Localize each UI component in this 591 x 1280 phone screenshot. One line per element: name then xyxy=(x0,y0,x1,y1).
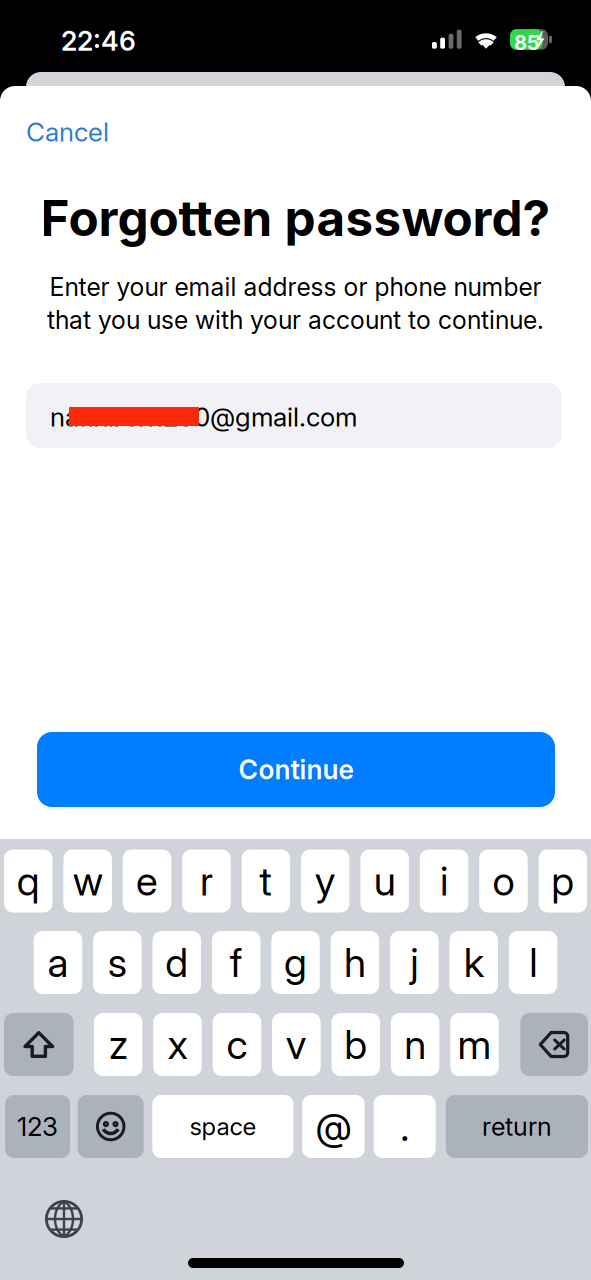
button[interactable]: . xyxy=(374,1095,436,1158)
button[interactable]: return xyxy=(446,1095,588,1158)
staticText: . xyxy=(400,1102,409,1151)
staticText: x xyxy=(168,1020,188,1069)
staticText: o xyxy=(492,857,514,905)
button[interactable]: d xyxy=(152,931,201,994)
button[interactable]: j xyxy=(390,931,439,994)
staticText: i xyxy=(440,857,448,905)
button[interactable]: @ xyxy=(302,1095,365,1158)
staticText: r xyxy=(200,857,213,905)
staticText: p xyxy=(551,857,574,905)
staticText: k xyxy=(464,938,484,987)
button[interactable]: v xyxy=(272,1013,321,1076)
button[interactable]: f xyxy=(212,931,260,994)
button[interactable]: z xyxy=(94,1013,142,1076)
staticText: Cancel xyxy=(26,116,109,148)
button[interactable]: k xyxy=(449,931,498,994)
button[interactable]: space xyxy=(152,1095,293,1158)
staticText: e xyxy=(136,857,158,905)
staticText: that you use with your account to contin… xyxy=(47,305,544,335)
staticText: Continue xyxy=(238,753,353,786)
button[interactable]: Next keyboard xyxy=(45,1200,83,1238)
staticText: g xyxy=(284,938,307,987)
button[interactable]: Cancel xyxy=(17,110,137,154)
staticText: Forgotten password? xyxy=(40,188,550,248)
staticText: l xyxy=(529,938,537,987)
button[interactable]: m xyxy=(450,1013,499,1076)
staticText: a xyxy=(47,938,68,987)
button[interactable]: a xyxy=(34,931,82,994)
staticText: return xyxy=(482,1111,552,1142)
staticText: z xyxy=(109,1020,128,1069)
staticText: j xyxy=(410,938,418,987)
staticText: b xyxy=(344,1020,367,1069)
button[interactable]: Continue xyxy=(37,732,555,807)
staticText: m xyxy=(457,1020,491,1069)
staticText: nafixbox1230@gmail.com xyxy=(50,401,357,433)
staticText: u xyxy=(374,857,396,905)
button[interactable]: q xyxy=(4,849,52,912)
button[interactable]: r xyxy=(182,849,231,912)
button[interactable]: n xyxy=(391,1013,439,1076)
staticText: n xyxy=(404,1020,426,1069)
staticText: 123 xyxy=(17,1111,58,1142)
button[interactable]: l xyxy=(509,931,557,994)
staticText: h xyxy=(344,938,366,987)
button[interactable]: y xyxy=(301,849,349,912)
button[interactable]: t xyxy=(242,849,290,912)
button[interactable]: i xyxy=(420,849,468,912)
button[interactable]: x xyxy=(153,1013,202,1076)
staticText: t xyxy=(259,857,272,905)
button[interactable]: u xyxy=(360,849,409,912)
button[interactable]: w xyxy=(63,849,112,912)
button[interactable]: Emoji xyxy=(78,1095,144,1158)
button[interactable]: 123 xyxy=(5,1095,70,1158)
staticText: c xyxy=(226,1020,247,1069)
staticText: 85 xyxy=(514,31,539,55)
staticText: q xyxy=(17,857,40,905)
button[interactable]: g xyxy=(271,931,320,994)
staticText: Enter your email address or phone number xyxy=(49,272,541,302)
button[interactable]: c xyxy=(213,1013,261,1076)
button[interactable]: b xyxy=(331,1013,380,1076)
button[interactable]: p xyxy=(539,849,587,912)
button[interactable]: s xyxy=(93,931,142,994)
button[interactable]: e xyxy=(123,849,171,912)
staticText: v xyxy=(286,1020,307,1069)
staticText: f xyxy=(230,938,243,987)
staticText: d xyxy=(165,938,188,987)
staticText: @ xyxy=(315,1104,351,1149)
staticText: y xyxy=(315,857,336,905)
staticText: s xyxy=(108,938,127,987)
staticText: space xyxy=(189,1112,256,1141)
staticText: 22:46 xyxy=(61,25,136,57)
button[interactable]: Shift xyxy=(4,1013,74,1076)
staticText: w xyxy=(73,857,103,905)
button[interactable]: o xyxy=(479,849,528,912)
button[interactable]: Delete xyxy=(520,1013,588,1076)
button[interactable]: h xyxy=(331,931,379,994)
